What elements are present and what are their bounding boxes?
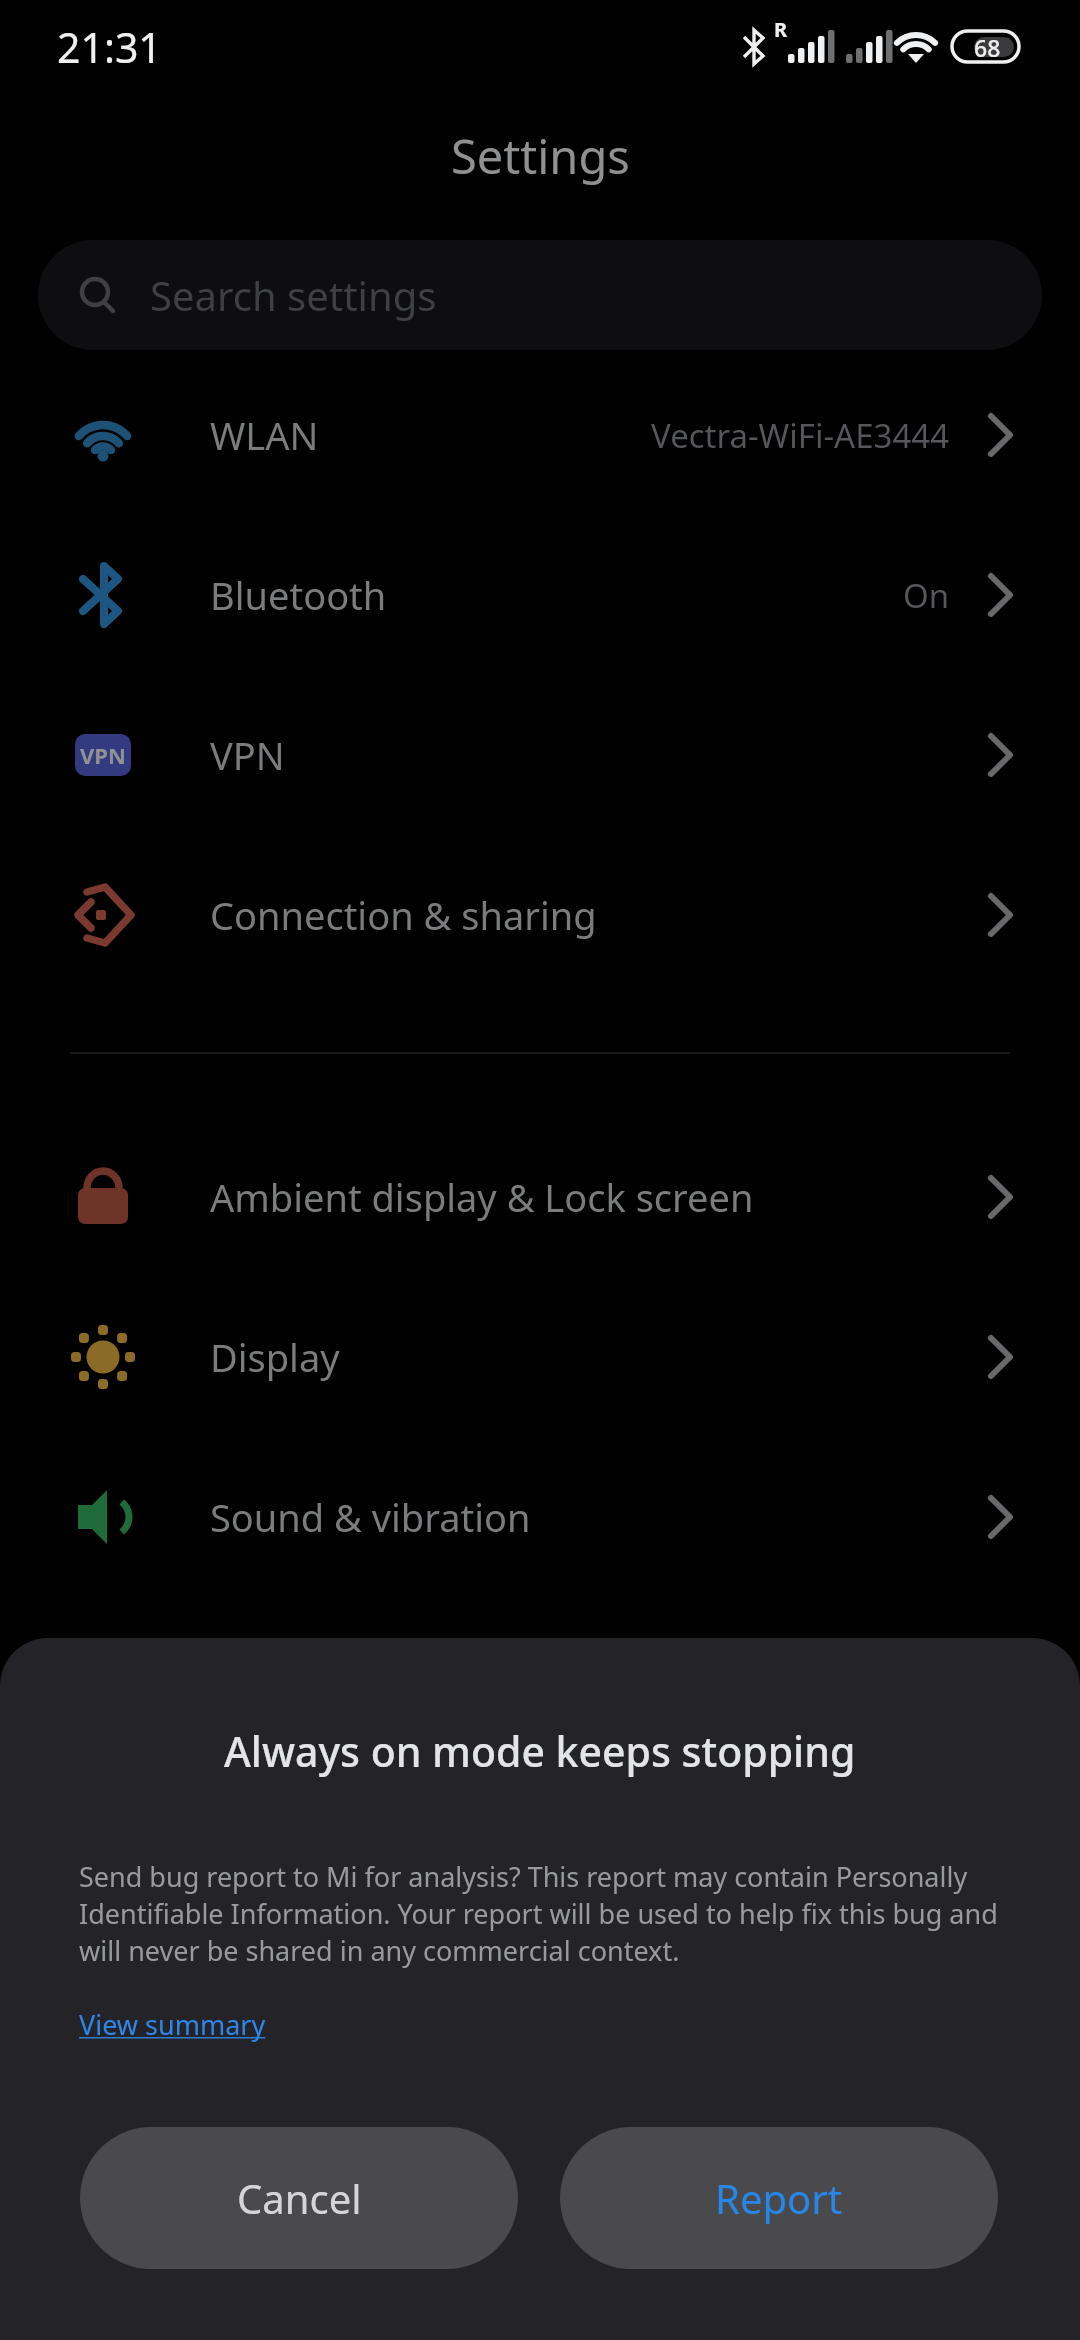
staticText: 68 <box>974 32 1001 63</box>
staticText: Send bug report to Mi for analysis? This… <box>79 1858 968 1895</box>
button[interactable]: Ambient display & Lock screen <box>0 1117 1080 1277</box>
staticText: will never be shared in any commercial c… <box>79 1932 680 1969</box>
staticText: Bluetooth <box>210 569 387 621</box>
staticText: Report <box>715 2171 843 2225</box>
staticText: 21:31 <box>57 19 162 75</box>
staticText: R <box>774 16 788 43</box>
button[interactable]: View summary <box>79 2006 266 2043</box>
button[interactable]: Display <box>0 1277 1080 1437</box>
staticText: Sound & vibration <box>210 1491 531 1543</box>
staticText: Vectra-WiFi-AE3444 <box>651 413 950 458</box>
staticText: Ambient display & Lock screen <box>210 1171 754 1223</box>
staticText: Display <box>210 1331 340 1383</box>
button[interactable]: VPN <box>0 675 1080 835</box>
button[interactable]: WLAN <box>0 355 1080 515</box>
button[interactable]: Cancel <box>80 2127 518 2269</box>
staticText: Settings <box>451 124 630 188</box>
button[interactable]: Report <box>560 2127 998 2269</box>
staticText: Identifiable Information. Your report wi… <box>79 1895 998 1932</box>
staticText: VPN <box>80 740 126 770</box>
staticText: Always on mode keeps stopping <box>224 1723 856 1779</box>
button[interactable]: Bluetooth <box>0 515 1080 675</box>
button[interactable]: Search settings <box>38 240 1042 350</box>
staticText: WLAN <box>210 409 319 461</box>
button[interactable]: Sound & vibration <box>0 1437 1080 1597</box>
staticText: View summary <box>79 2006 266 2043</box>
staticText: VPN <box>210 729 285 781</box>
staticText: Connection & sharing <box>210 889 597 941</box>
button[interactable]: Connection & sharing <box>0 835 1080 995</box>
staticText: Search settings <box>150 268 437 322</box>
staticText: Cancel <box>237 2171 362 2225</box>
staticText: On <box>903 573 950 618</box>
